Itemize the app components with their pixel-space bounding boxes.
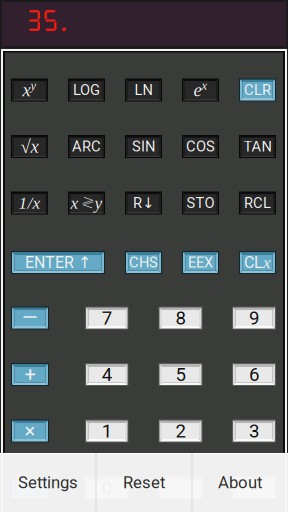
button[interactable]: RCL — [239, 191, 276, 214]
staticText: ÷ — [24, 476, 35, 499]
button[interactable]: . — [158, 476, 202, 499]
staticText: y — [30, 78, 36, 93]
staticText: 3 — [249, 420, 259, 442]
button[interactable]: Reset — [96, 453, 192, 512]
staticText: x≷y — [70, 193, 102, 213]
button[interactable]: 6 — [232, 363, 276, 386]
staticText: LOG — [73, 81, 100, 99]
button[interactable]: CLR — [239, 78, 276, 101]
staticText: x — [201, 78, 207, 93]
staticText: 4 — [102, 364, 112, 385]
button[interactable]: + — [11, 363, 49, 386]
staticText: × — [24, 419, 35, 443]
button[interactable]: TAN — [239, 135, 276, 158]
button[interactable]: 8 — [158, 306, 202, 329]
button[interactable]: CL — [239, 251, 276, 274]
staticText: — — [22, 306, 38, 330]
button[interactable]: = — [232, 476, 276, 499]
button[interactable]: COS — [182, 135, 219, 158]
button[interactable]: 7 — [85, 306, 128, 329]
button[interactable]: 4 — [85, 363, 128, 386]
staticText: EEX — [188, 254, 213, 271]
button[interactable]: LOG — [68, 78, 105, 101]
staticText: √x — [20, 136, 38, 157]
staticText: TAN — [243, 138, 271, 155]
button[interactable]: Settings — [0, 453, 96, 512]
staticText: STO — [186, 194, 214, 212]
staticText: CL — [244, 253, 263, 272]
staticText: Settings — [18, 473, 78, 492]
button[interactable]: e — [182, 78, 219, 101]
staticText: LN — [134, 81, 152, 99]
staticText: 6 — [249, 364, 259, 385]
button[interactable]: EEX — [182, 251, 219, 274]
button[interactable]: 3 — [232, 419, 276, 442]
staticText: About — [218, 473, 262, 492]
button[interactable]: x≷y — [68, 191, 105, 214]
button[interactable]: STO — [182, 191, 219, 214]
button[interactable]: R↓ — [125, 191, 162, 214]
staticText: 9 — [249, 307, 259, 329]
button[interactable]: ARC — [68, 135, 105, 158]
staticText: x — [263, 253, 271, 272]
staticText: SIN — [132, 138, 155, 155]
button[interactable]: x — [11, 78, 48, 101]
button[interactable]: ÷ — [11, 476, 49, 499]
staticText: CHS — [129, 254, 158, 271]
button[interactable]: — — [11, 306, 49, 329]
staticText: x — [22, 80, 30, 100]
staticText: RCL — [244, 194, 271, 212]
staticText: 8 — [175, 307, 185, 329]
staticText: Reset — [123, 473, 165, 492]
button[interactable]: SIN — [125, 135, 162, 158]
button[interactable]: 9 — [232, 306, 276, 329]
button[interactable]: √x — [11, 135, 48, 158]
button[interactable]: 1 — [85, 419, 128, 442]
button[interactable]: 2 — [158, 419, 202, 442]
button[interactable]: About — [192, 453, 288, 512]
staticText: ENTER ↑ — [25, 253, 91, 272]
staticText: CLR — [244, 81, 271, 99]
staticText: R↓ — [133, 194, 154, 212]
staticText: 1/x — [18, 193, 40, 213]
staticText: 2 — [175, 420, 185, 442]
staticText: 5 — [175, 364, 185, 385]
button[interactable]: ENTER ↑ — [11, 251, 105, 274]
button[interactable]: × — [11, 419, 49, 442]
staticText: COS — [186, 138, 215, 155]
staticText: 7 — [102, 307, 112, 329]
staticText: ARC — [72, 138, 101, 155]
button[interactable]: 0 — [85, 476, 128, 499]
button[interactable]: 1/x — [11, 191, 48, 214]
staticText: e — [193, 80, 201, 100]
staticText: 1 — [102, 420, 112, 442]
staticText: = — [249, 477, 259, 498]
button[interactable]: 5 — [158, 363, 202, 386]
staticText: + — [24, 363, 35, 386]
button[interactable]: CHS — [125, 251, 162, 274]
button[interactable]: LN — [125, 78, 162, 101]
